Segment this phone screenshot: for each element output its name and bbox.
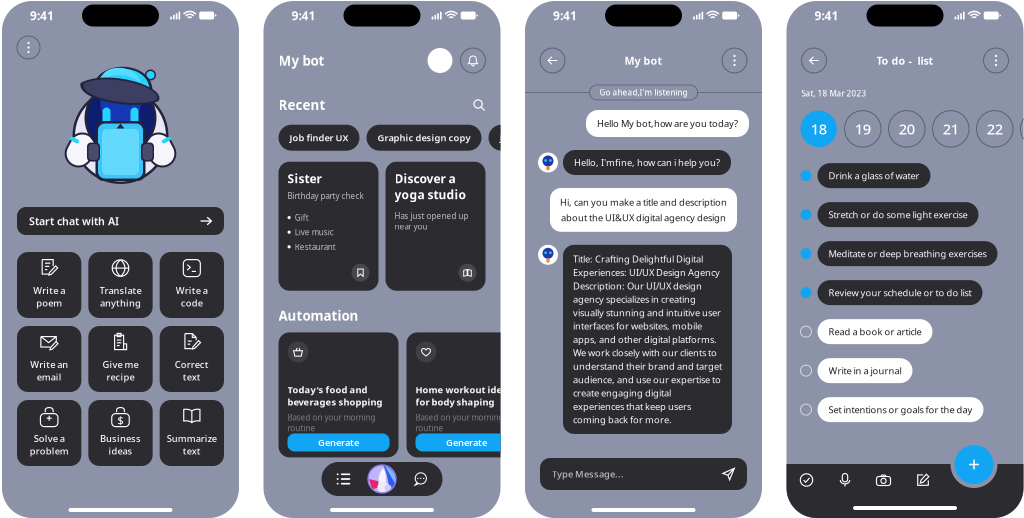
button[interactable]: 18	[800, 111, 837, 147]
staticText: near you	[394, 221, 427, 232]
staticText: Read a book or article	[828, 325, 921, 338]
button[interactable]: Jo	[488, 125, 519, 151]
staticText: interfaces for websites, mobile	[573, 320, 702, 332]
button[interactable]: Tasks	[799, 473, 813, 487]
button[interactable]: Start chat with AI	[17, 207, 224, 235]
button[interactable]: Back	[540, 48, 565, 73]
button[interactable]: Sister	[278, 162, 378, 291]
staticText: email	[37, 371, 62, 383]
button[interactable]: Give me	[88, 326, 153, 392]
staticText: 9:41	[814, 7, 838, 23]
button[interactable]: Write a	[160, 252, 224, 318]
button[interactable]: Translate	[88, 252, 153, 318]
button[interactable]: More options	[983, 48, 1008, 73]
button[interactable]: Write a	[17, 252, 81, 318]
button[interactable]: Drink a glass of water	[800, 163, 930, 188]
staticText: Sister	[287, 171, 321, 187]
button[interactable]: Meditate or deep breathing exercises	[800, 241, 997, 266]
staticText: for body shaping	[415, 396, 494, 408]
button[interactable]: Back	[801, 48, 826, 73]
staticText: Birthday party check	[287, 191, 363, 201]
staticText: 19	[855, 119, 871, 139]
staticText: Jo	[499, 131, 508, 144]
staticText: Experiences: UI/UX Design Agency	[573, 266, 720, 279]
button[interactable]: Chats	[413, 472, 427, 485]
button[interactable]: Review your schedule or to do list	[800, 280, 982, 305]
staticText: Hello, I'mfine, how can i help you?	[574, 156, 720, 169]
button[interactable]: Set intentions or goals for the day	[800, 397, 983, 422]
staticText: 9:41	[291, 7, 315, 23]
staticText: Automation	[278, 307, 358, 324]
button[interactable]: Camera	[876, 474, 890, 485]
button[interactable]: Generate	[287, 433, 389, 451]
staticText: Write a	[176, 284, 208, 297]
staticText: 9:41	[553, 7, 577, 23]
button[interactable]: Compose	[916, 473, 929, 486]
staticText: Give me	[102, 358, 138, 371]
staticText: Set intentions or goals for the day	[828, 403, 972, 416]
button[interactable]: 23	[1020, 111, 1024, 147]
staticText: Write an	[30, 358, 68, 371]
staticText: Type Message...	[552, 468, 624, 480]
button[interactable]: Read a book or article	[800, 319, 932, 344]
button[interactable]: Generate	[415, 433, 517, 451]
staticText: Stretch or do some light exercise	[828, 208, 967, 221]
staticText: $	[117, 413, 123, 427]
button[interactable]: Summarize	[160, 400, 224, 466]
staticText: Discover a	[394, 171, 455, 187]
button[interactable]: Today's food and	[278, 332, 398, 457]
button[interactable]: 21	[932, 111, 969, 147]
staticText: coming back for more.	[573, 413, 672, 426]
staticText: Hi, can you make a title and description	[560, 196, 727, 208]
button[interactable]: 19	[844, 111, 881, 147]
button[interactable]: 20	[888, 111, 925, 147]
staticText: audience, and use our expertise to	[573, 373, 721, 386]
button[interactable]: Correct	[160, 326, 224, 392]
button[interactable]: Solve a	[17, 400, 81, 466]
button[interactable]: $	[88, 400, 153, 466]
button[interactable]: Write an	[17, 326, 81, 392]
button[interactable]: Voice	[839, 473, 850, 487]
staticText: text	[183, 445, 201, 457]
staticText: Summarize	[167, 432, 217, 445]
staticText: Go ahead,I'm listening	[599, 87, 687, 98]
staticText: Hello My bot,how are you today?	[597, 117, 738, 130]
staticText: Job finder UX	[289, 131, 348, 144]
staticText: Correct	[175, 358, 209, 371]
button[interactable]: Home workout ide	[406, 332, 526, 457]
staticText: poem	[36, 297, 62, 309]
staticText: visually stunning and intuitive user	[573, 306, 721, 319]
button[interactable]: Graphic design copy	[366, 125, 481, 151]
staticText: Gift	[295, 212, 309, 223]
button[interactable]: More options	[17, 36, 40, 59]
staticText: Description: Our UI/UX design	[573, 280, 702, 292]
button[interactable]: Discover a	[385, 162, 485, 291]
button[interactable]: Search	[472, 98, 485, 111]
staticText: My bot	[624, 53, 662, 68]
button[interactable]: List	[336, 473, 350, 484]
button[interactable]: 22	[976, 111, 1013, 147]
staticText: Home workout ide	[415, 383, 502, 396]
staticText: Recent	[278, 96, 325, 114]
button[interactable]: Add task	[950, 441, 997, 488]
staticText: Has just opened up	[394, 211, 468, 221]
staticText: Start chat with AI	[29, 214, 119, 228]
button[interactable]: Stretch or do some light exercise	[800, 202, 978, 227]
button[interactable]: Assistant	[368, 465, 396, 493]
staticText: understand their brand and target	[573, 360, 722, 372]
button[interactable]: Job finder UX	[278, 125, 359, 151]
button[interactable]: Write in a journal	[800, 358, 912, 383]
staticText: To do - list	[876, 53, 933, 68]
staticText: 21	[943, 119, 959, 139]
button[interactable]: Profile	[427, 48, 452, 73]
staticText: Generate	[446, 436, 487, 449]
staticText: Today's food and	[287, 383, 367, 396]
staticText: 9:41	[30, 7, 54, 23]
button[interactable]: More options	[722, 48, 747, 73]
button[interactable]: Notifications	[460, 48, 485, 73]
button[interactable]: Type Message...	[540, 458, 747, 490]
staticText: My bot	[278, 52, 324, 69]
staticText: problem	[30, 445, 69, 457]
staticText: agency specializes in creating	[573, 293, 696, 305]
staticText: Sat, 18 Mar 2023	[801, 88, 866, 99]
